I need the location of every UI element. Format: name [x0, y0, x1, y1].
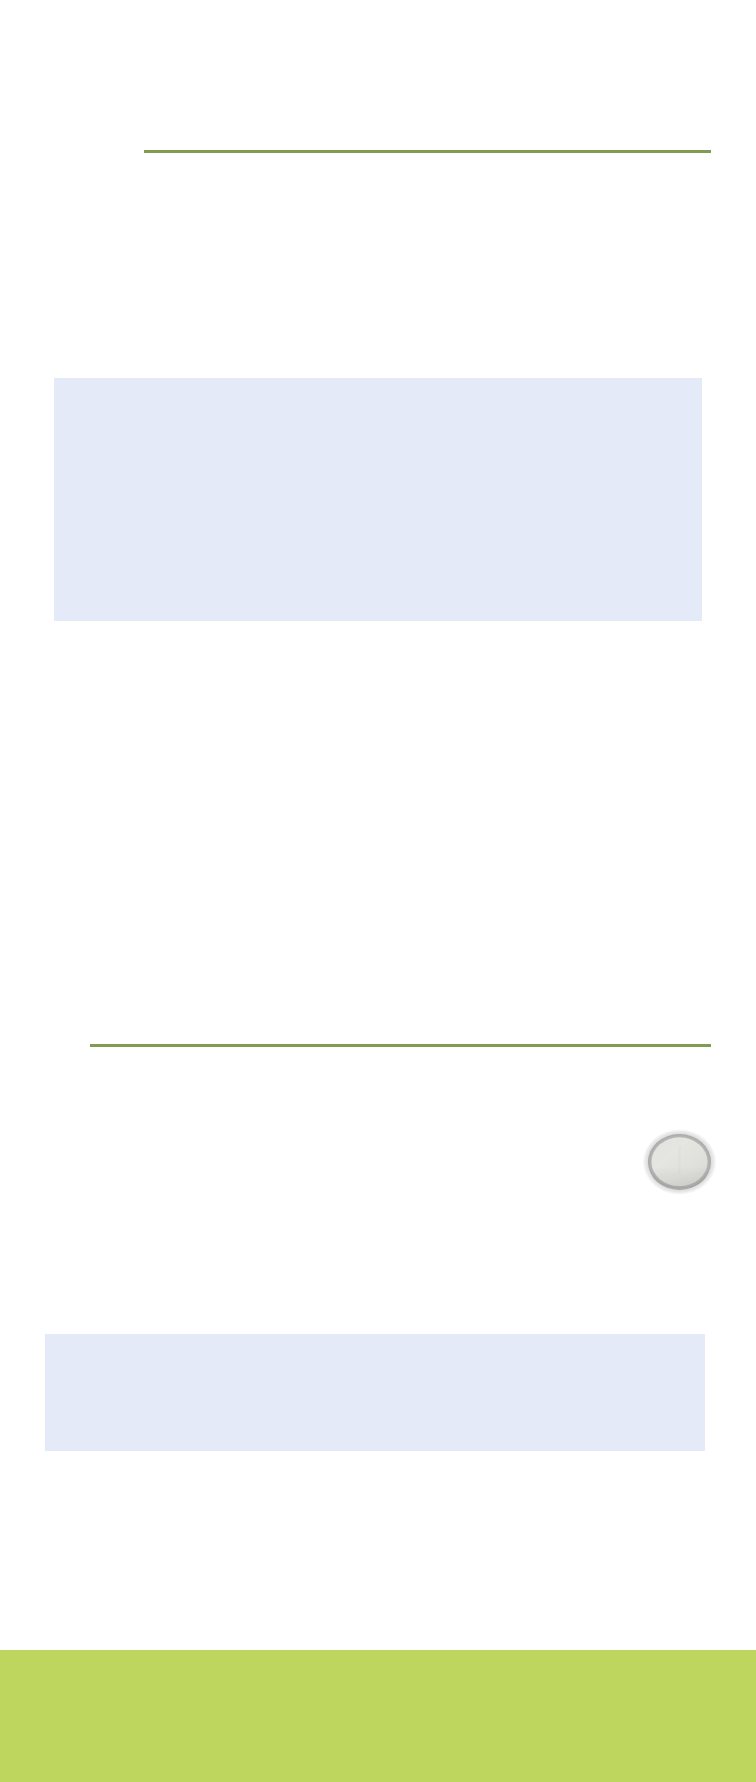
button[interactable]: Tablet photo	[644, 1130, 715, 1194]
